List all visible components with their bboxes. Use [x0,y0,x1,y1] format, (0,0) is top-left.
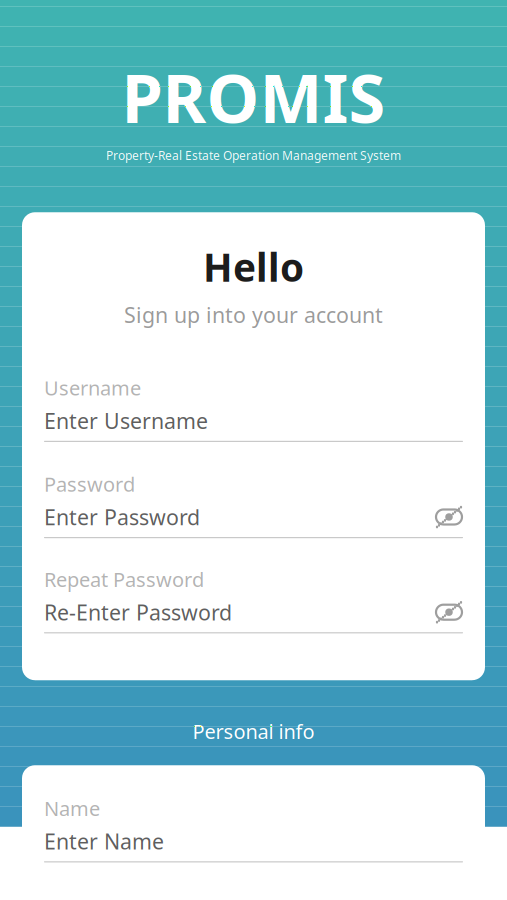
staticText: Enter Name [44,827,164,855]
staticText: Username [44,374,141,401]
staticText: Password [44,471,135,497]
button[interactable]: Username [44,378,463,442]
staticText: Re-Enter Password [44,598,232,626]
staticText: Personal info [192,718,314,745]
staticText: Enter Password [44,503,200,531]
button[interactable]: Password [44,474,463,538]
staticText: Sign up into your account [124,300,383,329]
staticText: PROMIS [121,53,385,141]
staticText: Name [44,795,100,822]
staticText: Hello [203,241,304,292]
button[interactable]: Repeat Password [44,569,463,633]
staticText: Repeat Password [44,566,204,592]
button[interactable]: Name [44,798,463,862]
staticText: Property-Real Estate Operation Managemen… [106,147,401,163]
staticText: Enter Username [44,407,208,435]
button[interactable]: Personal info [20,720,487,742]
